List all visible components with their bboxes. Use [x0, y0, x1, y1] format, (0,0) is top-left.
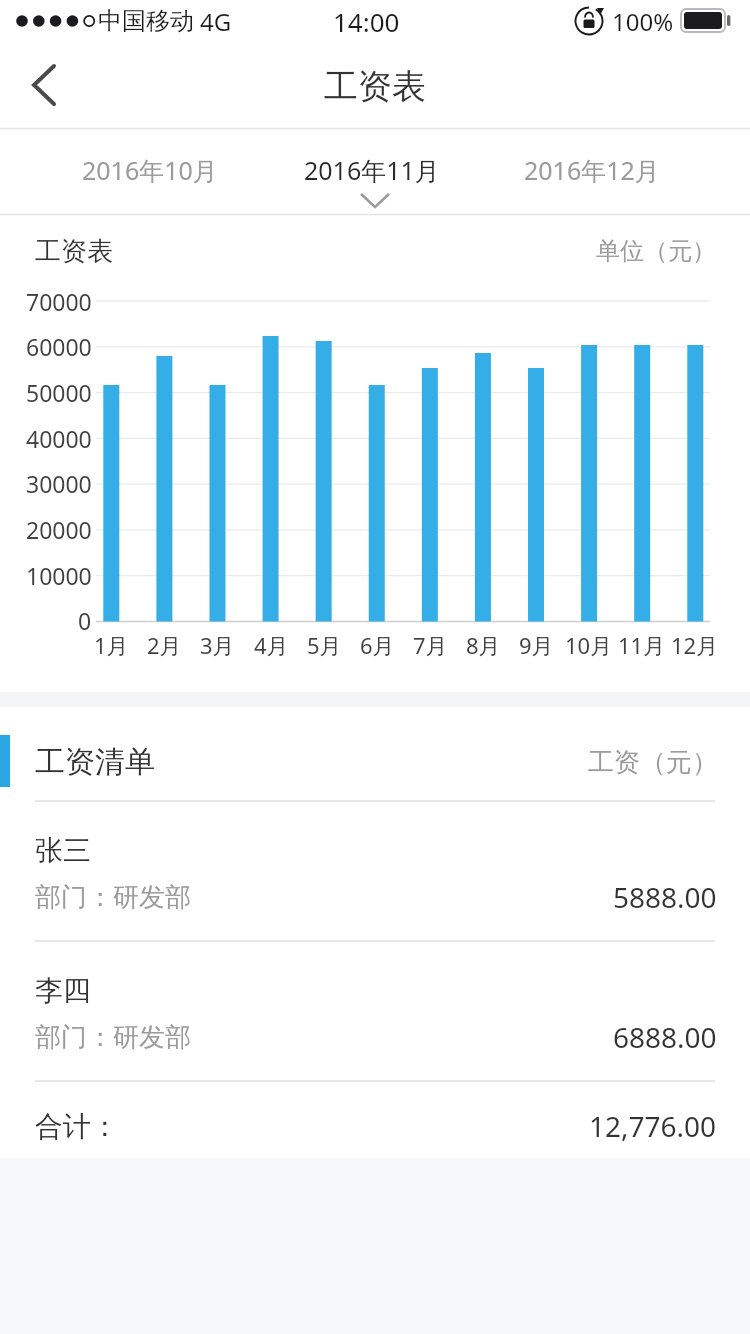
staticText: 6月 — [360, 630, 395, 660]
staticText: 李四 — [35, 973, 91, 1008]
staticText: 3月 — [200, 630, 235, 660]
staticText: 70000 — [26, 286, 92, 317]
staticText: 20000 — [26, 514, 92, 545]
staticText: 9月 — [519, 630, 554, 660]
staticText: 10月 — [565, 630, 613, 660]
staticText: 60000 — [26, 331, 92, 362]
staticText: 5月 — [307, 630, 342, 660]
button[interactable] — [20, 56, 80, 116]
button[interactable] — [0, 950, 750, 1080]
staticText: 2月 — [147, 630, 182, 660]
staticText: 50000 — [26, 377, 92, 408]
staticText: 40000 — [26, 423, 92, 454]
staticText: 1月 — [94, 630, 129, 660]
staticText: 4月 — [254, 630, 289, 660]
staticText: 4G — [200, 5, 232, 38]
button[interactable]: 2016年11月 — [262, 130, 482, 210]
staticText: 工资清单 — [35, 743, 155, 781]
staticText: 张三 — [35, 833, 91, 868]
staticText: 5888.00 — [613, 878, 717, 916]
staticText: 2016年10月 — [82, 153, 218, 187]
button[interactable]: 2016年10月 — [40, 130, 260, 210]
staticText: 6888.00 — [613, 1018, 717, 1056]
staticText: 2016年11月 — [304, 153, 440, 187]
staticText: 0 — [78, 605, 92, 636]
staticText: 30000 — [26, 468, 92, 499]
staticText: 100% — [612, 5, 674, 38]
staticText: 单位（元） — [596, 236, 716, 266]
staticText: 8月 — [466, 630, 501, 660]
staticText: 7月 — [413, 630, 448, 660]
staticText: 10000 — [26, 560, 92, 591]
staticText: 工资（元） — [588, 746, 718, 779]
staticText: 14:00 — [333, 4, 400, 39]
staticText: 工资表 — [324, 65, 426, 108]
staticText: 部门：研发部 — [35, 1021, 191, 1054]
staticText: 合计： — [35, 1109, 119, 1144]
button[interactable] — [0, 810, 750, 940]
staticText: 12月 — [671, 630, 719, 660]
staticText: 12,776.00 — [589, 1107, 717, 1145]
staticText: 2016年12月 — [524, 153, 660, 187]
staticText: 工资表 — [35, 235, 113, 268]
staticText: 部门：研发部 — [35, 881, 191, 914]
staticText: 中国移动 — [98, 6, 194, 36]
staticText: 11月 — [618, 630, 666, 660]
button[interactable]: 2016年12月 — [482, 130, 702, 210]
